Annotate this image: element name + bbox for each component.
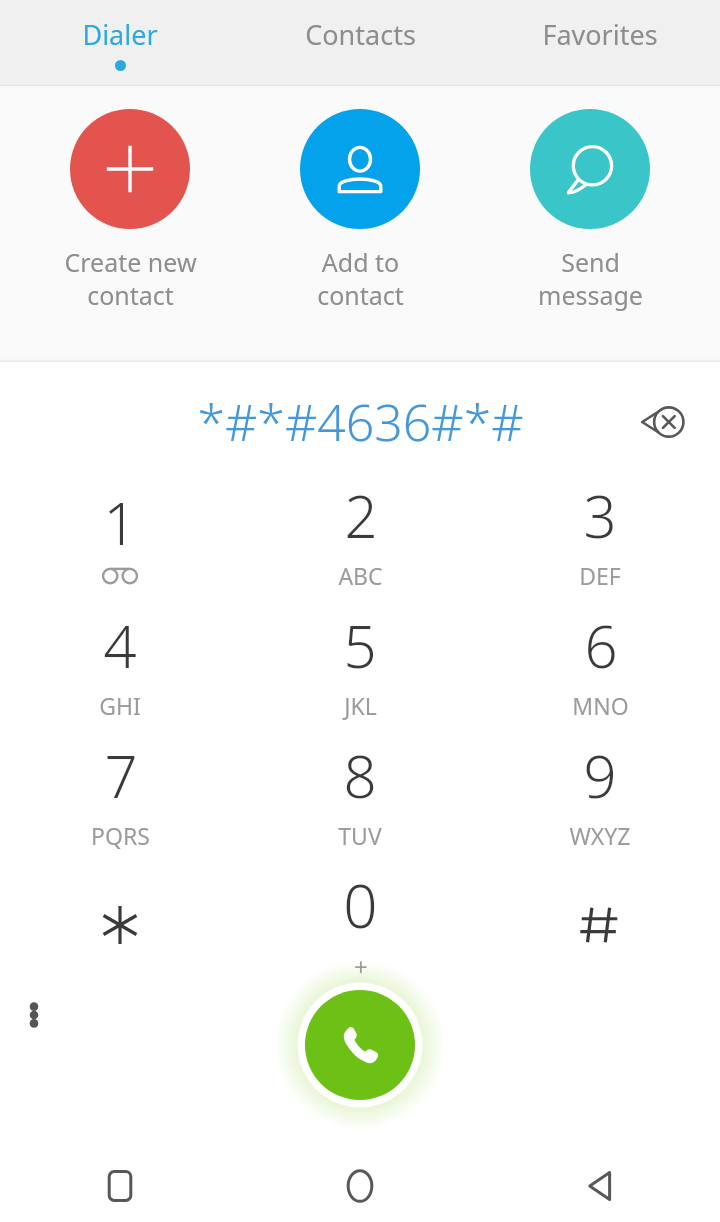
- staticText: 4: [103, 606, 137, 685]
- button[interactable]: 5: [240, 600, 480, 730]
- button[interactable]: 2: [240, 470, 480, 600]
- button[interactable]: Create new contact: [30, 109, 230, 312]
- button[interactable]: 9: [480, 730, 720, 860]
- button[interactable]: Favorites: [480, 0, 720, 86]
- staticText: Send message: [538, 245, 643, 312]
- staticText: Contacts: [305, 16, 416, 53]
- staticText: +: [354, 950, 368, 983]
- staticText: 9: [583, 736, 617, 815]
- button[interactable]: Call: [285, 970, 435, 1120]
- staticText: DEF: [579, 560, 621, 591]
- button[interactable]: [480, 860, 720, 990]
- staticText: *#*#4636#*#: [197, 388, 524, 456]
- staticText: 5: [343, 606, 377, 685]
- button[interactable]: 3: [480, 470, 720, 600]
- staticText: GHI: [99, 690, 141, 721]
- button[interactable]: [0, 860, 240, 990]
- button[interactable]: Recents: [0, 1150, 240, 1222]
- staticText: Add to contact: [317, 245, 404, 312]
- button[interactable]: Contacts: [240, 0, 480, 86]
- button[interactable]: 7: [0, 730, 240, 860]
- staticText: 7: [104, 736, 138, 815]
- button[interactable]: 8: [240, 730, 480, 860]
- button[interactable]: Add to contact: [260, 109, 460, 312]
- staticText: 8: [343, 736, 377, 815]
- button[interactable]: 1: [0, 470, 240, 600]
- button[interactable]: 0: [240, 860, 480, 990]
- button[interactable]: Dialer: [0, 0, 240, 86]
- staticText: 0: [343, 864, 378, 946]
- staticText: Favorites: [542, 16, 658, 53]
- button[interactable]: Home: [240, 1150, 480, 1222]
- button[interactable]: Back: [480, 1150, 720, 1222]
- staticText: PQRS: [91, 820, 150, 851]
- staticText: Create new contact: [64, 245, 197, 312]
- staticText: MNO: [572, 690, 629, 721]
- button[interactable]: Send message: [490, 109, 690, 312]
- staticText: WXYZ: [569, 820, 631, 851]
- button[interactable]: More options: [5, 986, 63, 1044]
- staticText: TUV: [338, 820, 382, 851]
- button[interactable]: 4: [0, 600, 240, 730]
- staticText: Dialer: [82, 16, 158, 53]
- button[interactable]: 6: [480, 600, 720, 730]
- staticText: 2: [344, 476, 378, 555]
- button[interactable]: Backspace: [622, 380, 706, 464]
- staticText: 1: [103, 483, 137, 562]
- staticText: ABC: [338, 560, 383, 591]
- staticText: 3: [583, 476, 617, 555]
- staticText: 6: [584, 606, 618, 685]
- staticText: JKL: [344, 690, 377, 721]
